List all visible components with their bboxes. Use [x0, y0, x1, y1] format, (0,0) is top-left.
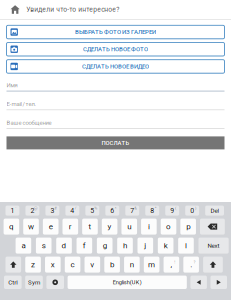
staticText: h: [123, 241, 127, 250]
button[interactable]: i: [141, 219, 157, 235]
staticText: СДЕЛАТЬ НОВОЕ ФОТО: [83, 46, 148, 53]
staticText: f: [83, 241, 86, 250]
button[interactable]: t: [82, 219, 98, 235]
button[interactable]: ПОСЛАТЬ: [6, 136, 224, 149]
button[interactable]: Backspace: [200, 219, 225, 235]
staticText: n: [130, 260, 134, 269]
button[interactable]: 5: [85, 206, 99, 216]
button[interactable]: Ctrl: [4, 276, 22, 289]
button[interactable]: y: [102, 219, 117, 235]
staticText: Next: [208, 242, 220, 249]
button[interactable]: z: [25, 257, 41, 273]
staticText: y: [108, 222, 112, 231]
staticText: o: [166, 222, 171, 231]
button[interactable]: Right: [210, 276, 227, 289]
button[interactable]: l: [178, 238, 194, 254]
staticText: 1: [10, 206, 14, 215]
staticText: 2: [30, 206, 34, 215]
button[interactable]: 1: [5, 206, 19, 216]
staticText: 0: [190, 206, 194, 215]
button[interactable]: k: [158, 238, 173, 254]
staticText: m: [148, 260, 155, 269]
button[interactable]: b: [104, 257, 120, 273]
button[interactable]: Left: [190, 276, 207, 289]
staticText: ^: [115, 206, 117, 210]
button[interactable]: 6: [105, 206, 119, 216]
button[interactable]: 7: [125, 206, 139, 216]
staticText: t: [88, 222, 91, 231]
button[interactable]: j: [137, 238, 153, 254]
button[interactable]: d: [56, 238, 72, 254]
button[interactable]: 0: [185, 206, 199, 216]
button[interactable]: ВЫБРАТЬ ФОТО ИЗ ГАЛЕРЕИ: [6, 25, 224, 39]
staticText: СДЕЛАТЬ НОВОЕ ВИДЕО: [82, 63, 149, 70]
button[interactable]: 2: [25, 206, 39, 216]
staticText: &: [134, 206, 137, 210]
staticText: c: [71, 260, 75, 269]
staticText: p: [186, 222, 190, 231]
staticText: v: [90, 260, 94, 269]
staticText: *: [155, 206, 157, 210]
button[interactable]: o: [161, 219, 176, 235]
button[interactable]: 8: [145, 206, 159, 216]
staticText: w: [28, 222, 34, 231]
staticText: ПОСЛАТЬ: [101, 139, 129, 146]
staticText: b: [110, 260, 114, 269]
staticText: d: [61, 241, 66, 250]
button[interactable]: Sym: [25, 276, 43, 289]
button[interactable]: q: [4, 219, 19, 235]
staticText: Sym: [28, 279, 40, 286]
staticText: !: [174, 260, 175, 264]
staticText: k: [164, 241, 168, 250]
button[interactable]: u: [121, 219, 137, 235]
button[interactable]: English(UK): [68, 276, 187, 289]
button[interactable]: p: [180, 219, 196, 235]
staticText: Ctrl: [8, 279, 17, 286]
button[interactable]: n: [124, 257, 140, 273]
staticText: 4: [70, 206, 74, 215]
staticText: %: [94, 206, 97, 210]
staticText: r: [69, 222, 72, 231]
staticText: l: [185, 241, 187, 250]
button[interactable]: 3: [45, 206, 59, 216]
staticText: E-mail / тел.: [6, 101, 36, 107]
staticText: ?: [193, 260, 195, 264]
button[interactable]: 9: [165, 206, 179, 216]
staticText: English(UK): [113, 279, 142, 286]
button[interactable]: e: [43, 219, 58, 235]
staticText: Имя: [6, 82, 17, 89]
button[interactable]: 4: [65, 206, 79, 216]
button[interactable]: Shift: [5, 257, 21, 273]
button[interactable]: m: [144, 257, 159, 273]
button[interactable]: Settings: [46, 276, 64, 289]
button[interactable]: c: [65, 257, 80, 273]
button[interactable]: a: [16, 238, 31, 254]
staticText: 6: [110, 206, 114, 215]
button[interactable]: h: [117, 238, 133, 254]
button[interactable]: Next: [198, 238, 229, 254]
staticText: q: [9, 222, 14, 231]
button[interactable]: Del: [205, 206, 224, 216]
button[interactable]: ,: [164, 257, 179, 273]
button[interactable]: Shift: [203, 257, 223, 273]
button[interactable]: v: [84, 257, 100, 273]
staticText: Del: [211, 207, 219, 214]
staticText: i: [148, 222, 150, 231]
button[interactable]: x: [45, 257, 61, 273]
staticText: Увидели что-то интересное?: [26, 6, 119, 13]
button[interactable]: .: [183, 257, 199, 273]
button[interactable]: g: [97, 238, 112, 254]
button[interactable]: w: [23, 219, 39, 235]
button[interactable]: СДЕЛАТЬ НОВОЕ ВИДЕО: [6, 60, 224, 73]
staticText: 7: [130, 206, 134, 215]
staticText: 3: [50, 206, 54, 215]
button[interactable]: r: [62, 219, 78, 235]
staticText: ): [195, 206, 196, 210]
button[interactable]: f: [77, 238, 92, 254]
button[interactable]: СДЕЛАТЬ НОВОЕ ФОТО: [6, 42, 224, 56]
staticText: j: [144, 241, 146, 250]
button[interactable]: Увидели что-то интересное?: [0, 0, 231, 19]
staticText: Ваше сообщение: [6, 119, 51, 126]
staticText: s: [42, 241, 46, 250]
button[interactable]: s: [36, 238, 51, 254]
